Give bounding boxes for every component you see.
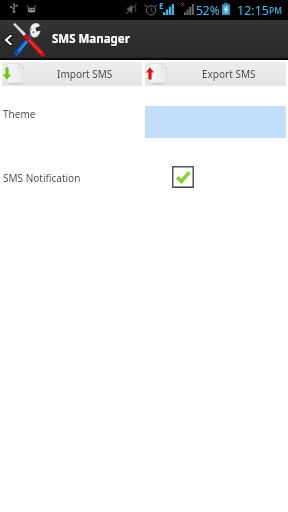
staticText: Theme	[3, 107, 36, 121]
button[interactable]: Import SMS	[2, 62, 142, 86]
button[interactable]: Back	[0, 20, 16, 58]
staticText: SMS Notification	[3, 171, 81, 185]
button[interactable]: SMS Notification enabled	[172, 166, 194, 188]
staticText: 52%	[196, 2, 220, 18]
staticText: E	[159, 0, 164, 11]
staticText: PM	[269, 5, 282, 17]
staticText: Import SMS	[57, 67, 113, 81]
button[interactable]: Export SMS	[145, 62, 286, 86]
staticText: Export SMS	[202, 67, 256, 81]
staticText: 12:15	[237, 2, 269, 19]
staticText: SMS Manager	[52, 31, 130, 47]
